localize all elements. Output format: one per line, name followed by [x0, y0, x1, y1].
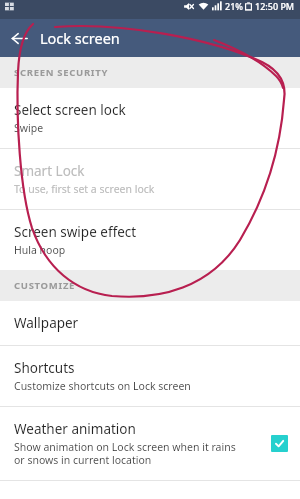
staticText: Weather animation — [14, 420, 136, 438]
staticText: Wallpaper — [14, 314, 79, 332]
staticText: Swipe — [14, 121, 44, 135]
staticText: SCREEN SECURITY — [14, 66, 109, 79]
staticText: Hula hoop — [14, 243, 66, 257]
staticText: 21% — [225, 0, 243, 12]
button[interactable]: Weather animation enabled — [271, 435, 288, 452]
button[interactable]: Smart Lock — [0, 149, 300, 209]
staticText: Smart Lock — [14, 162, 85, 180]
staticText: Select screen lock — [14, 101, 126, 119]
staticText: 12:50 PM — [255, 0, 295, 12]
staticText: Customize shortcuts on Lock screen — [14, 379, 191, 393]
button[interactable]: Weather animation — [0, 407, 300, 480]
staticText: To use, first set a screen lock — [14, 182, 155, 196]
button[interactable]: Screen swipe effect — [0, 210, 300, 270]
staticText: Lock screen — [40, 28, 120, 48]
staticText: CUSTOMIZE — [14, 279, 76, 292]
staticText: Screen swipe effect — [14, 223, 137, 241]
button[interactable]: Select screen lock — [0, 88, 300, 148]
button[interactable]: Wallpaper — [0, 301, 300, 345]
staticText: Show animation on Lock screen when it ra… — [14, 440, 236, 467]
staticText: Shortcuts — [14, 359, 75, 377]
button[interactable]: Back — [0, 19, 38, 57]
button[interactable]: Shortcuts — [0, 346, 300, 406]
